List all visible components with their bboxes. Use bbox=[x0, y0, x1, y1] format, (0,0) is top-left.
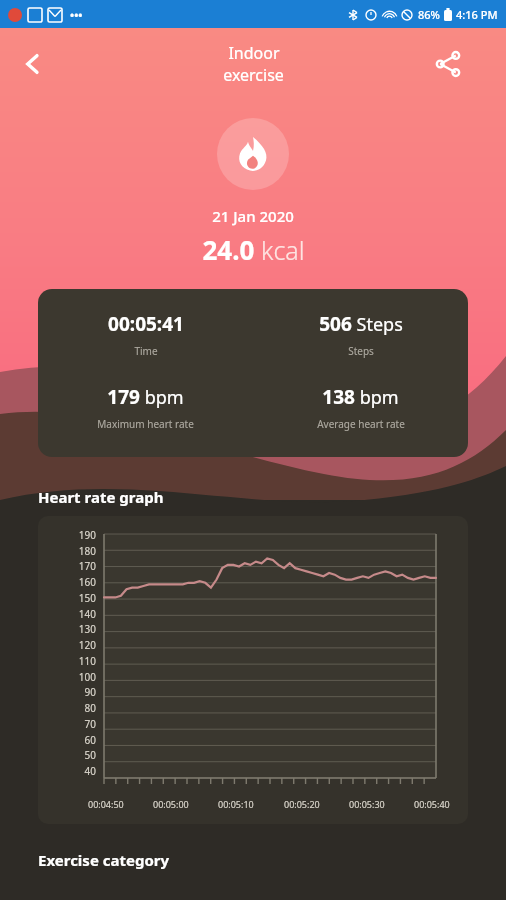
staticText: 86% bbox=[418, 7, 440, 22]
staticText: 150 bbox=[38, 591, 96, 605]
staticText: 180 bbox=[38, 544, 96, 558]
staticText: 60 bbox=[38, 733, 96, 747]
staticText: exercise bbox=[223, 64, 284, 86]
staticText: 00:04:50 bbox=[88, 798, 124, 810]
staticText: 120 bbox=[38, 638, 96, 652]
button[interactable]: 00:05:41 bbox=[38, 289, 468, 457]
staticText: 90 bbox=[38, 685, 96, 699]
staticText: 170 bbox=[38, 559, 96, 573]
staticText: Maximum heart rate bbox=[97, 417, 194, 431]
staticText: 21 Jan 2020 bbox=[212, 206, 294, 226]
staticText: 00:05:40 bbox=[414, 798, 450, 810]
staticText: 506 Steps bbox=[319, 311, 403, 337]
button[interactable]: Share bbox=[424, 40, 472, 88]
staticText: 00:05:10 bbox=[218, 798, 254, 810]
staticText: 138 bpm bbox=[322, 384, 399, 410]
staticText: 24.0 kcal bbox=[202, 232, 305, 267]
staticText: 00:05:20 bbox=[284, 798, 320, 810]
staticText: Heart rate graph bbox=[38, 487, 164, 507]
staticText: Steps bbox=[348, 344, 374, 358]
button[interactable]: Back bbox=[10, 41, 56, 87]
staticText: 70 bbox=[38, 717, 96, 731]
staticText: Average heart rate bbox=[317, 417, 405, 431]
staticText: 4:16 PM bbox=[456, 7, 498, 22]
staticText: 179 bpm bbox=[107, 384, 184, 410]
staticText: 00:05:30 bbox=[349, 798, 385, 810]
staticText: 130 bbox=[38, 622, 96, 636]
staticText: 160 bbox=[38, 575, 96, 589]
staticText: 110 bbox=[38, 654, 96, 668]
staticText: Time bbox=[134, 344, 158, 358]
staticText: Indoor bbox=[228, 42, 280, 64]
staticText: 190 bbox=[38, 528, 96, 542]
staticText: 140 bbox=[38, 607, 96, 621]
staticText: Exercise category bbox=[38, 850, 170, 870]
staticText: 00:05:00 bbox=[153, 798, 189, 810]
staticText: ••• bbox=[70, 7, 83, 22]
button[interactable]: 190 bbox=[38, 516, 468, 824]
staticText: 100 bbox=[38, 670, 96, 684]
staticText: 00:05:41 bbox=[108, 311, 184, 337]
staticText: 40 bbox=[38, 764, 96, 778]
staticText: 50 bbox=[38, 748, 96, 762]
staticText: 80 bbox=[38, 701, 96, 715]
